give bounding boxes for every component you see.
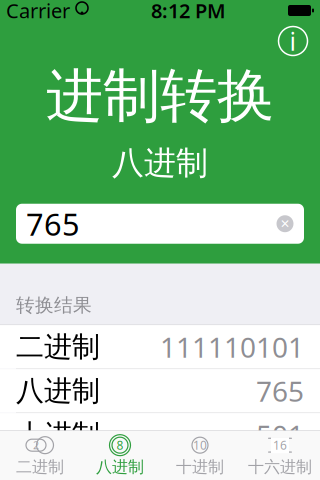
staticText: 十进制	[16, 418, 100, 452]
button[interactable]: Clear text	[269, 208, 301, 240]
staticText: 八进制	[96, 457, 144, 477]
staticText: 八进制	[112, 143, 208, 183]
staticText: 2	[33, 438, 39, 452]
button[interactable]: 10	[160, 431, 240, 480]
staticText: 进制转换	[46, 61, 274, 131]
staticText: 十进制	[176, 457, 224, 477]
staticText: 十六进制	[248, 457, 312, 477]
staticText: 转换结果	[16, 294, 92, 317]
button[interactable]: Info	[272, 20, 314, 62]
staticText: 765	[26, 203, 80, 244]
staticText: ✕	[280, 217, 290, 230]
staticText: Carrier	[6, 0, 70, 24]
staticText: 501	[256, 416, 304, 453]
staticText: 111110101	[160, 328, 304, 365]
button[interactable]: 二进制	[0, 325, 320, 369]
staticText: 765	[256, 372, 304, 409]
staticText: 10	[193, 437, 207, 453]
button[interactable]: 16	[240, 431, 320, 480]
staticText: 二进制	[16, 457, 64, 477]
staticText: 1F5	[257, 460, 304, 480]
button[interactable]: 十六进制	[0, 457, 320, 480]
staticText: 八进制	[16, 374, 100, 408]
staticText: 二进制	[16, 330, 100, 364]
staticText: 十六进制	[16, 462, 128, 480]
staticText: 8:12 PM	[151, 0, 226, 24]
button[interactable]: 8	[80, 431, 160, 480]
button[interactable]: 2	[0, 431, 80, 480]
button[interactable]: 十进制	[0, 413, 320, 457]
button[interactable]: 八进制	[0, 369, 320, 413]
staticText: i	[289, 24, 296, 58]
staticText: 8	[116, 437, 123, 453]
staticText: 16	[273, 437, 287, 453]
